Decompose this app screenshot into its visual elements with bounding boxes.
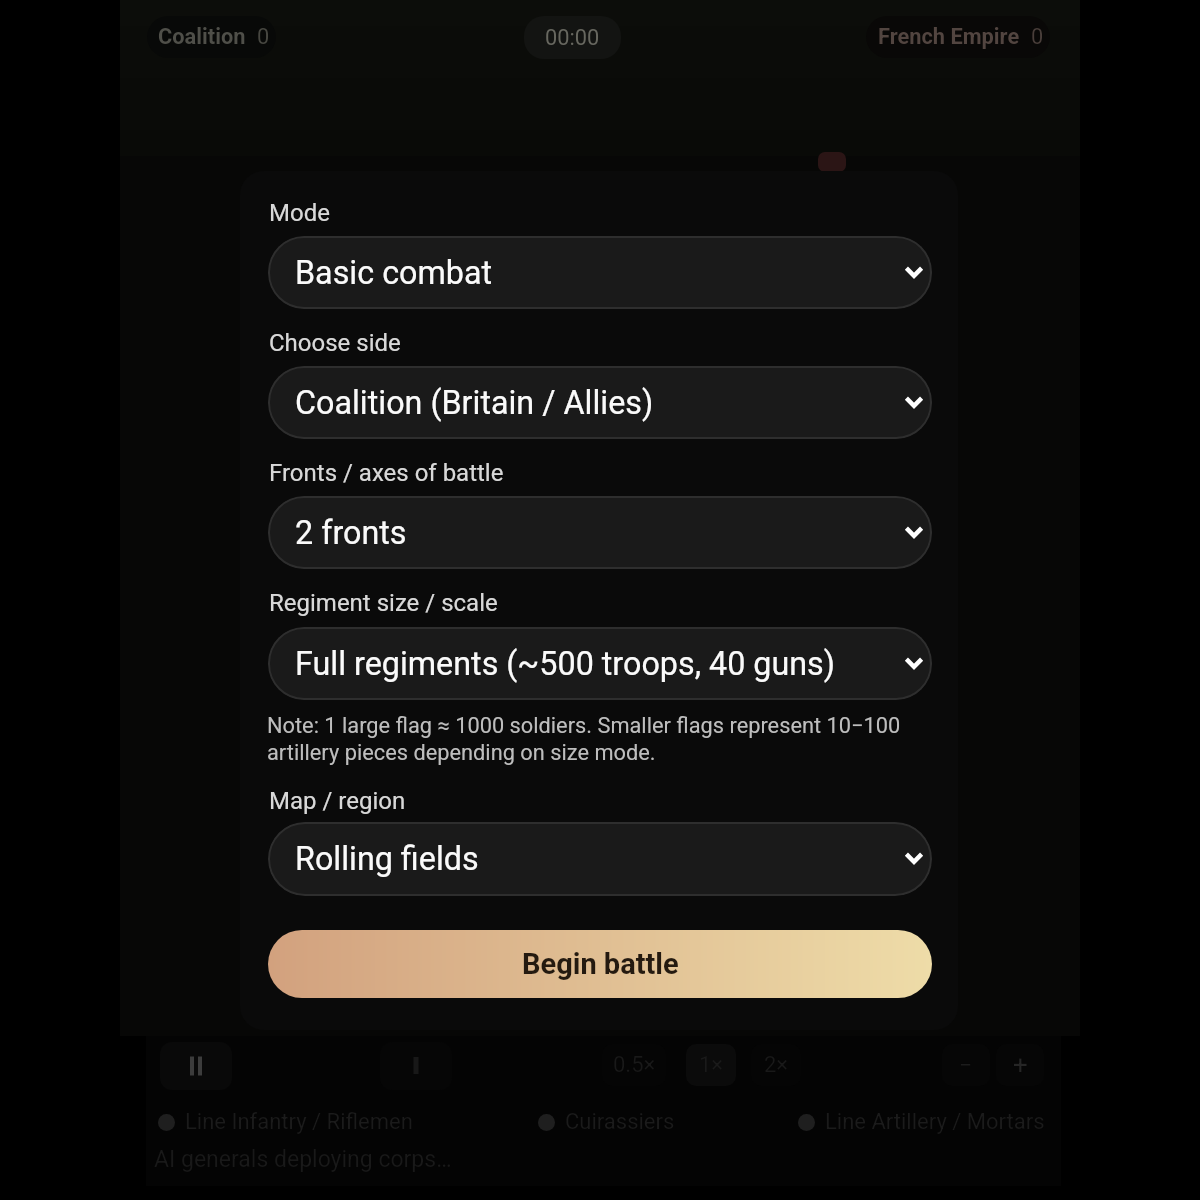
button[interactable]: Begin battle <box>268 930 932 998</box>
staticText: French Empire <box>878 24 1020 50</box>
button[interactable]: Cuirassiers <box>538 1109 675 1135</box>
staticText: Note: 1 large flag ≈ 1000 soldiers. Smal… <box>267 713 915 765</box>
staticText: Line Artillery / Mortars <box>825 1109 1045 1135</box>
staticText: AI generals deploying corps… <box>154 1146 452 1173</box>
other: Expand <box>900 844 928 872</box>
staticText: 0 <box>257 24 270 50</box>
button[interactable]: Basic combat <box>268 236 932 309</box>
staticText: Coalition <box>158 24 246 50</box>
button[interactable]: Rolling fields <box>268 822 932 896</box>
button[interactable]: 2 fronts <box>268 496 932 569</box>
staticText: Basic combat <box>295 254 493 292</box>
button[interactable]: 0.5× <box>602 1044 666 1086</box>
staticText: Map / region <box>269 787 406 815</box>
staticText: Fronts / axes of battle <box>269 459 504 487</box>
other: Expand <box>900 518 928 546</box>
button[interactable]: Line Artillery / Mortars <box>798 1109 1045 1135</box>
button[interactable]: Line Infantry / Riflemen <box>158 1109 413 1135</box>
staticText: 1× <box>699 1052 724 1078</box>
button[interactable]: Pause <box>160 1042 232 1090</box>
button[interactable]: Coalition (Britain / Allies) <box>268 366 932 439</box>
staticText: Full regiments (~500 troops, 40 guns) <box>295 645 836 683</box>
staticText: Line Infantry / Riflemen <box>185 1109 413 1135</box>
other: Expand <box>900 258 928 286</box>
staticText: Coalition (Britain / Allies) <box>295 384 654 422</box>
button[interactable]: Coalition <box>147 16 276 58</box>
other: Expand <box>900 388 928 416</box>
staticText: Cuirassiers <box>565 1109 675 1135</box>
button[interactable]: 2× <box>751 1044 801 1086</box>
staticText: 00:00 <box>545 25 600 51</box>
staticText: Regiment size / scale <box>269 589 498 617</box>
button[interactable]: Zoom in <box>996 1044 1044 1086</box>
staticText: Rolling fields <box>295 840 479 878</box>
staticText: 2× <box>764 1052 789 1078</box>
staticText: 0 <box>1031 24 1044 50</box>
staticText: Begin battle <box>522 947 679 981</box>
staticText: − <box>959 1052 973 1079</box>
staticText: + <box>1013 1050 1028 1080</box>
staticText: Mode <box>269 199 330 227</box>
button[interactable]: French Empire <box>866 16 1050 58</box>
staticText: Choose side <box>269 329 401 357</box>
other: Expand <box>900 649 928 677</box>
staticText: 2 fronts <box>295 514 407 552</box>
button[interactable]: 00:00 <box>524 16 621 59</box>
button[interactable]: Full regiments (~500 troops, 40 guns) <box>268 627 932 700</box>
staticText: 0.5× <box>613 1052 656 1078</box>
